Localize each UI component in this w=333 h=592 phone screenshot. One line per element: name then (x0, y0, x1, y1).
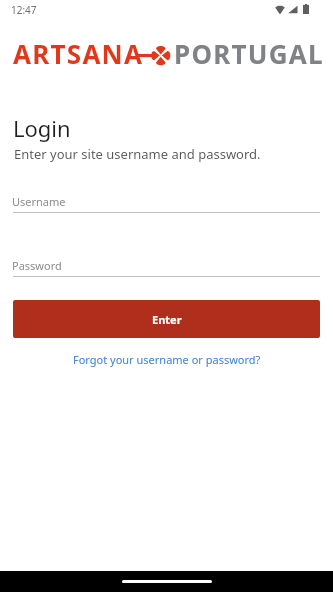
staticText: Forgot your username or password? (73, 352, 261, 367)
button[interactable]: Password (13, 250, 320, 277)
staticText: 12:47 (11, 3, 37, 17)
other: Wi-Fi (275, 5, 285, 14)
button[interactable]: Forgot your username or password? (65, 349, 269, 370)
staticText: Username (12, 194, 66, 209)
staticText: Enter your site username and password. (14, 145, 261, 163)
other: Battery (303, 4, 309, 14)
staticText: Password (12, 258, 62, 273)
button[interactable]: Username (13, 186, 320, 213)
staticText: PORTUGAL (174, 36, 324, 71)
staticText: ARTSANA (13, 36, 144, 71)
staticText: Login (13, 113, 71, 143)
button[interactable]: Enter (13, 300, 320, 338)
staticText: Enter (152, 312, 182, 327)
other: Signal (288, 5, 298, 14)
